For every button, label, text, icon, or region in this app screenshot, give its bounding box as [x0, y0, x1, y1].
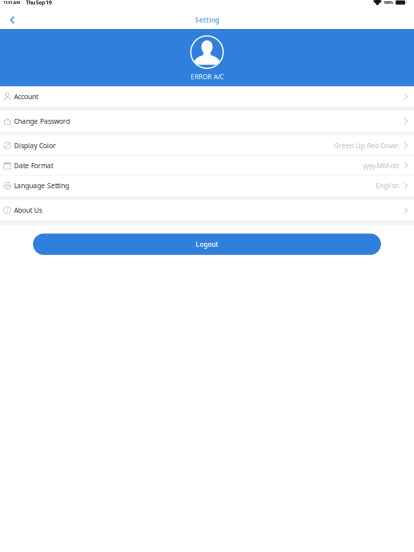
button[interactable]: Back [0, 11, 23, 28]
staticText: 100% [384, 0, 394, 5]
staticText: yyyy-MM-dd [363, 161, 399, 170]
button[interactable]: Language Setting [0, 176, 414, 196]
staticText: Thu Sep 19 [26, 0, 52, 6]
staticText: English [376, 181, 399, 190]
button[interactable]: Date Format [0, 156, 414, 176]
button[interactable]: Display Color [0, 135, 414, 156]
button[interactable]: About Us [0, 200, 414, 220]
button[interactable]: Account [0, 86, 414, 107]
staticText: 11:51 AM [3, 0, 20, 5]
staticText: Logout [195, 240, 218, 249]
staticText: Setting [195, 16, 219, 24]
staticText: Date Format [14, 161, 53, 170]
staticText: Display Color [14, 141, 56, 150]
staticText: Account [14, 92, 38, 101]
button[interactable]: Change Password [0, 111, 414, 131]
staticText: Change Password [14, 117, 70, 125]
staticText: Green Up Red Down [334, 141, 399, 150]
staticText: About Us [14, 206, 42, 215]
staticText: ERROR A/C [190, 72, 223, 81]
button[interactable]: Logout [33, 233, 381, 255]
staticText: Language Setting [14, 181, 69, 190]
